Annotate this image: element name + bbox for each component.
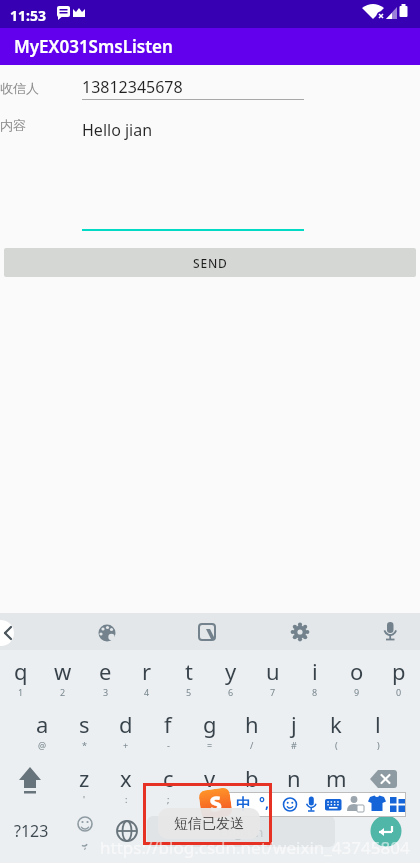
button[interactable]: q (0, 650, 42, 703)
staticText: ? (292, 793, 296, 805)
staticText: @ (38, 739, 47, 751)
staticText: v (204, 763, 216, 793)
staticText: , (84, 839, 87, 851)
staticText: k (330, 709, 342, 739)
staticText: https://blog.csdn.net/weixin_43745804 (100, 836, 410, 859)
button[interactable]: o (336, 650, 378, 703)
staticText: 短信已发送 (174, 815, 244, 833)
staticText: i (312, 656, 318, 686)
staticText: 0 (396, 686, 402, 698)
staticText: c (163, 763, 174, 793)
staticText: 13812345678 (82, 76, 183, 98)
button[interactable]: ?123 (8, 810, 54, 852)
button[interactable]: i (294, 650, 336, 703)
staticText: t (185, 656, 193, 686)
staticText: z (79, 763, 90, 793)
staticText: ( (335, 739, 338, 751)
staticText: f (164, 709, 172, 739)
button[interactable]: 13812345678 (82, 72, 304, 102)
button[interactable]: f (147, 703, 189, 756)
staticText: a (36, 709, 49, 739)
staticText: ) (377, 739, 380, 751)
button[interactable]: g (189, 703, 231, 756)
button[interactable]: h (231, 703, 273, 756)
button[interactable]: p (378, 650, 420, 703)
staticText: 4 (144, 686, 150, 698)
staticText: q (14, 656, 28, 686)
button[interactable]: x (105, 757, 147, 810)
staticText: 内容 (0, 117, 26, 133)
button[interactable]: a (21, 703, 63, 756)
staticText: °, (259, 793, 269, 812)
button[interactable]: 中 (232, 792, 254, 817)
staticText: 9 (354, 686, 360, 698)
button[interactable]: English (147, 816, 335, 847)
button[interactable]: v (189, 757, 231, 810)
staticText: j (291, 709, 297, 739)
staticText: ' (83, 793, 86, 805)
staticText: o (350, 656, 364, 686)
button[interactable]: n (273, 757, 315, 810)
staticText: r (142, 656, 152, 686)
staticText: l (375, 709, 381, 739)
button[interactable]: y (210, 650, 252, 703)
button[interactable]: j (273, 703, 315, 756)
staticText: x (120, 763, 132, 793)
staticText: h (245, 709, 259, 739)
staticText: # (291, 739, 297, 751)
button[interactable]: b (231, 757, 273, 810)
staticText: s (79, 709, 90, 739)
staticText: MyEX031SmsListen (14, 35, 173, 58)
staticText: ~ (334, 793, 340, 805)
staticText: S (208, 789, 224, 818)
staticText: = (207, 739, 213, 751)
staticText: p (392, 656, 406, 686)
button[interactable]: e (84, 650, 126, 703)
button[interactable]: k (315, 703, 357, 756)
staticText: e (99, 656, 112, 686)
button[interactable]: m (315, 757, 357, 810)
button[interactable] (0, 620, 14, 646)
staticText: 6 (228, 686, 234, 698)
staticText: English (219, 823, 264, 841)
staticText: m (326, 763, 347, 793)
staticText: + (123, 739, 129, 751)
button[interactable]: t (168, 650, 210, 703)
staticText: 11:53 (10, 6, 46, 25)
staticText: 8 (312, 686, 318, 698)
staticText: w (54, 656, 72, 686)
button[interactable]: Hello jian (82, 115, 304, 233)
staticText: * (82, 739, 87, 751)
staticText: 7 (270, 686, 276, 698)
staticText: 2 (60, 686, 66, 698)
staticText: d (119, 709, 133, 739)
button[interactable]: c (147, 757, 189, 810)
button[interactable]: z (63, 757, 105, 810)
button[interactable]: SEND (4, 248, 416, 277)
button[interactable]: r (126, 650, 168, 703)
staticText: u (266, 656, 280, 686)
button[interactable]: °, (253, 790, 275, 815)
staticText: / (250, 739, 254, 751)
staticText: b (245, 763, 259, 793)
staticText: - (167, 739, 170, 751)
staticText: 3 (103, 686, 109, 698)
staticText: 5 (186, 686, 192, 698)
button[interactable]: d (105, 703, 147, 756)
staticText: 1 (18, 686, 24, 698)
button[interactable]: s (63, 703, 105, 756)
staticText: SEND (193, 255, 228, 271)
staticText: " (208, 793, 212, 805)
staticText: 收信人 (0, 80, 39, 96)
staticText: ?123 (14, 820, 49, 842)
button[interactable]: u (252, 650, 294, 703)
staticText: g (203, 709, 217, 739)
staticText: y (225, 656, 237, 686)
staticText: 中 (236, 795, 251, 814)
staticText: n (287, 763, 301, 793)
staticText: Hello jian (82, 119, 153, 141)
button[interactable]: l (357, 703, 399, 756)
staticText: : (125, 793, 128, 805)
button[interactable]: w (42, 650, 84, 703)
